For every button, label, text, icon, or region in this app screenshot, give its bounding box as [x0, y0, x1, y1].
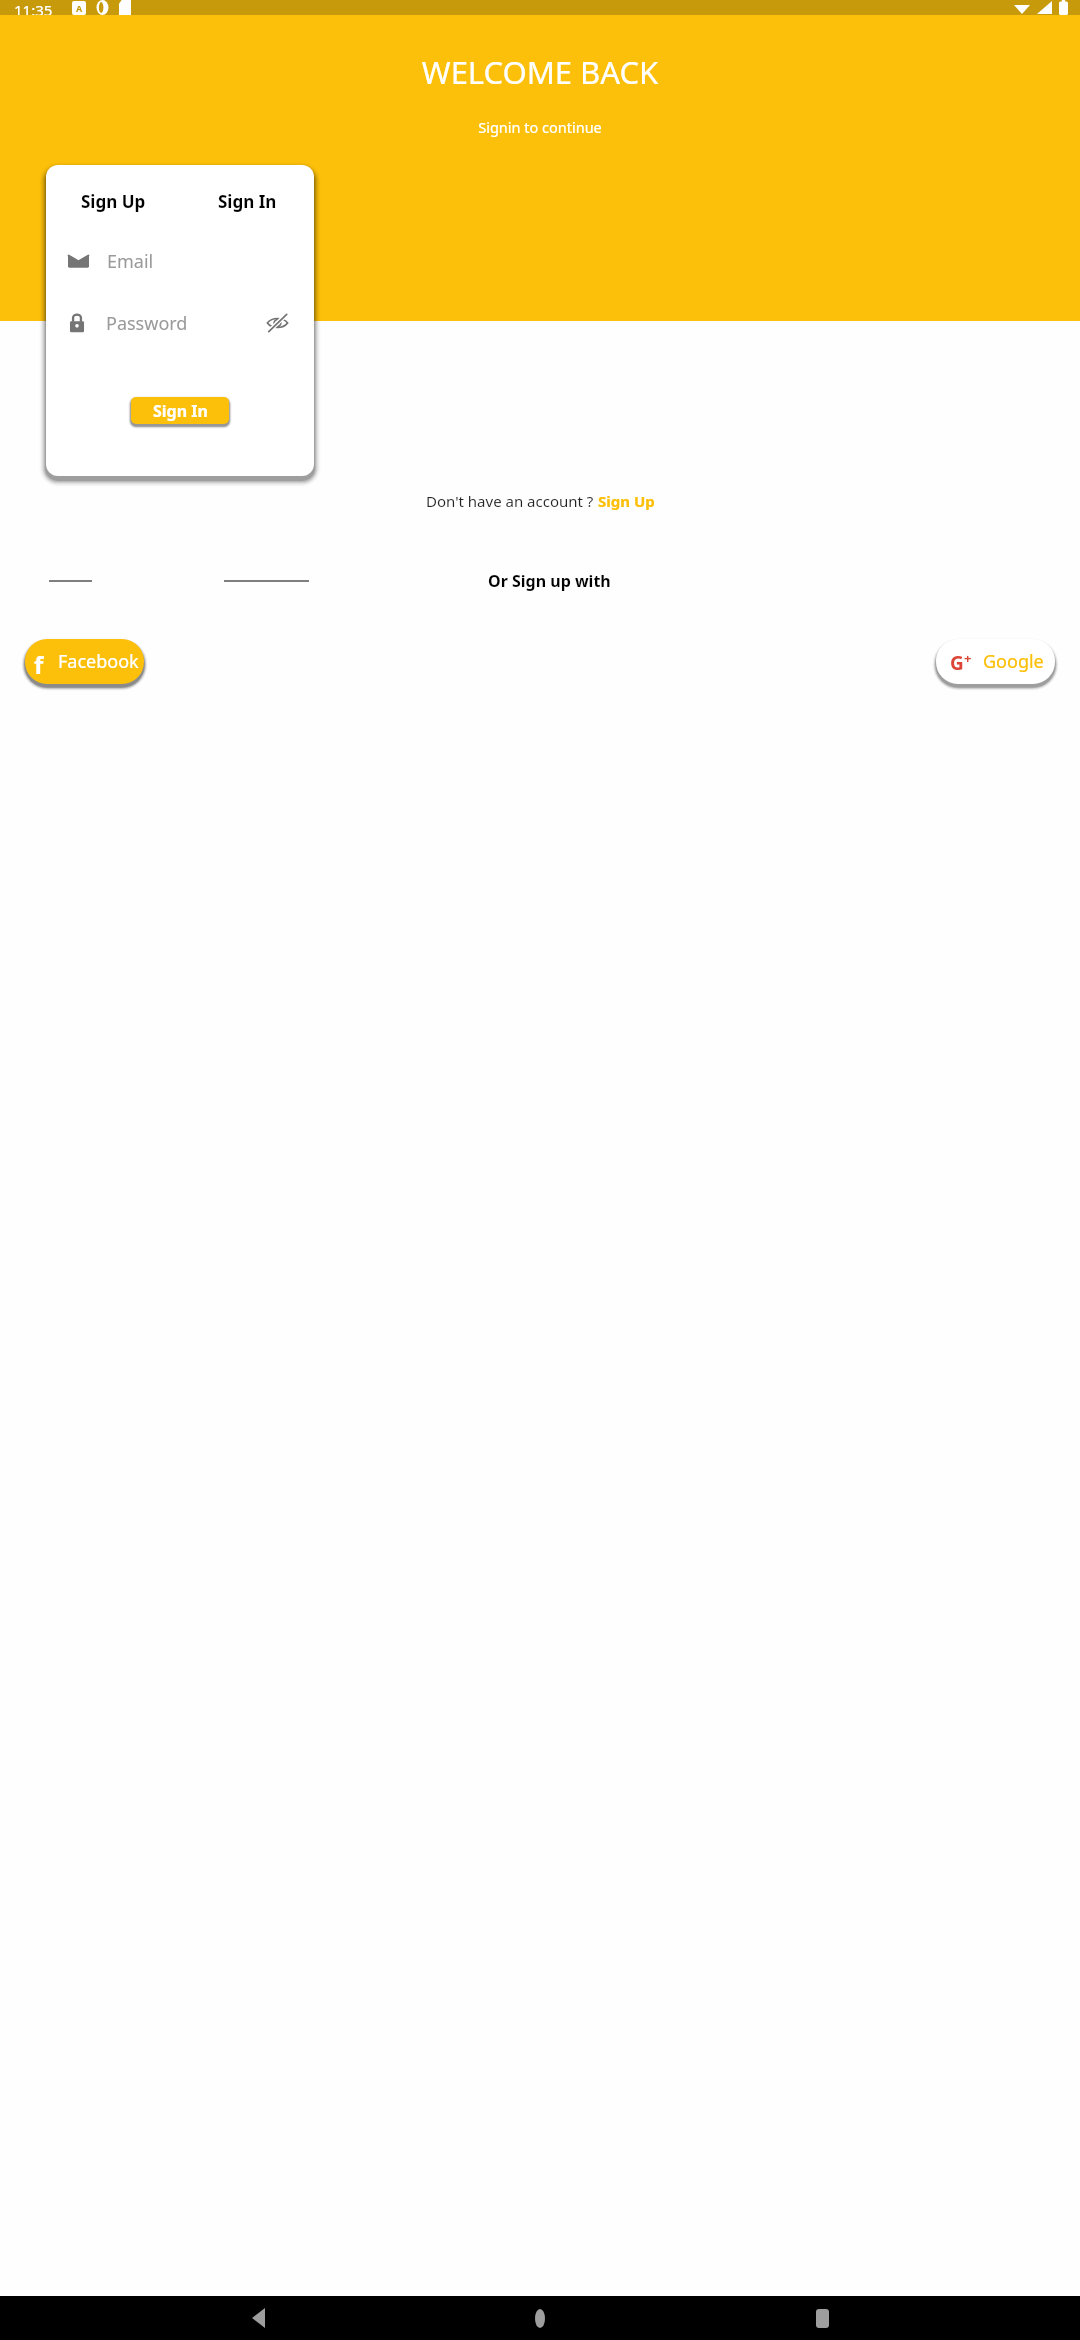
staticText: f	[34, 648, 44, 676]
button[interactable]: Show password	[262, 308, 292, 338]
staticText: Don't have an account ?	[426, 491, 598, 511]
staticText: Password	[106, 311, 262, 336]
staticText: +	[964, 649, 972, 667]
staticText: 11:35	[14, 0, 53, 15]
button[interactable]: Sign Up	[598, 491, 655, 511]
staticText: Sign Up	[81, 190, 146, 213]
staticText: Sign In	[218, 190, 277, 213]
staticText: WELCOME BACK	[0, 51, 1080, 93]
staticText: Email	[107, 249, 154, 274]
button[interactable]: Sign Up	[46, 181, 180, 221]
button[interactable]: Home	[516, 2296, 564, 2340]
staticText: Sign In	[153, 400, 208, 422]
staticText: Signin to continue	[0, 117, 1080, 137]
staticText: Or Sign up with	[488, 570, 611, 592]
staticText: Facebook	[58, 649, 139, 674]
staticText: Sign Up	[598, 491, 655, 511]
staticText: G	[950, 650, 964, 674]
button[interactable]: Recent apps	[798, 2296, 846, 2340]
staticText: A	[76, 2, 83, 14]
button[interactable]: Email	[68, 239, 292, 283]
button[interactable]: Back	[234, 2296, 282, 2340]
button[interactable]: f	[25, 639, 144, 684]
button[interactable]: Password	[68, 301, 292, 345]
staticText: Google	[983, 649, 1044, 674]
button[interactable]: Sign In	[131, 397, 229, 424]
button[interactable]: Sign In	[180, 181, 314, 221]
button[interactable]: G	[936, 639, 1055, 684]
